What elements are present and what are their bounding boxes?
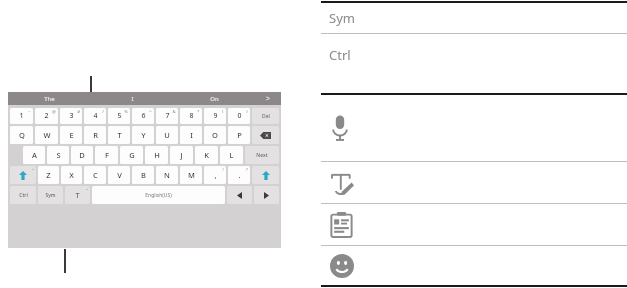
staticText: /: [102, 109, 104, 115]
button[interactable]: D: [71, 146, 93, 164]
staticText: A: [32, 150, 37, 160]
staticText: T: [117, 130, 122, 140]
button[interactable]: A: [23, 146, 45, 164]
staticText: Sym: [45, 192, 56, 199]
button[interactable]: I: [91, 92, 173, 105]
staticText: ^: [149, 109, 152, 115]
button[interactable]: Move cursor left: [227, 186, 252, 204]
button[interactable]: N: [156, 166, 178, 184]
staticText: J: [180, 150, 183, 160]
button[interactable]: 4: [84, 108, 106, 124]
button[interactable]: X: [61, 166, 82, 184]
button[interactable]: H: [145, 146, 168, 164]
staticText: ): [246, 109, 248, 115]
button[interactable]: Shift: [252, 166, 279, 184]
button[interactable]: Emoji: [321, 246, 627, 285]
staticText: •: [32, 167, 34, 173]
button[interactable]: Voice input: [321, 95, 627, 161]
button[interactable]: On: [173, 92, 255, 105]
button[interactable]: R: [84, 126, 106, 144]
staticText: T: [75, 190, 80, 200]
staticText: E: [69, 130, 74, 140]
button[interactable]: P: [228, 126, 250, 144]
button[interactable]: Clipboard: [321, 204, 627, 245]
button[interactable]: T: [108, 126, 130, 144]
button[interactable]: Sym: [321, 3, 627, 33]
button[interactable]: B: [132, 166, 154, 184]
button[interactable]: 7: [156, 108, 178, 124]
button[interactable]: Input method: [65, 186, 90, 204]
staticText: .: [238, 170, 241, 180]
button[interactable]: Y: [132, 126, 154, 144]
button[interactable]: Z: [38, 166, 59, 184]
staticText: !: [222, 167, 224, 173]
button[interactable]: I: [180, 126, 202, 144]
button[interactable]: Handwriting: [321, 162, 627, 203]
button[interactable]: S: [47, 146, 69, 164]
staticText: V: [117, 170, 122, 180]
button[interactable]: 0: [228, 108, 250, 124]
staticText: 2: [44, 111, 49, 121]
button[interactable]: .: [228, 166, 250, 184]
staticText: X: [69, 170, 74, 180]
button[interactable]: J: [170, 146, 193, 164]
staticText: Y: [141, 130, 146, 140]
staticText: 9: [213, 111, 218, 121]
button[interactable]: O: [204, 126, 226, 144]
button[interactable]: 6: [132, 108, 154, 124]
staticText: ~: [28, 109, 31, 115]
staticText: (: [222, 109, 224, 115]
staticText: P: [237, 130, 242, 140]
staticText: *: [197, 109, 200, 115]
button[interactable]: 3: [60, 108, 82, 124]
button[interactable]: Ctrl: [321, 34, 627, 93]
button[interactable]: 5: [108, 108, 130, 124]
staticText: M: [188, 170, 195, 180]
button[interactable]: 1: [10, 108, 33, 124]
staticText: @: [52, 109, 56, 115]
staticText: •: [86, 187, 88, 193]
staticText: English(US): [145, 192, 172, 199]
button[interactable]: V: [108, 166, 130, 184]
button[interactable]: English(US): [92, 186, 225, 204]
button[interactable]: Sym: [38, 186, 63, 204]
button[interactable]: Del: [252, 108, 279, 124]
button[interactable]: Q: [10, 126, 33, 144]
button[interactable]: Ctrl: [10, 186, 36, 204]
button[interactable]: 2: [35, 108, 58, 124]
button[interactable]: Move cursor right: [254, 186, 279, 204]
staticText: Del: [262, 113, 270, 120]
button[interactable]: More suggestions: [255, 92, 281, 105]
staticText: O: [212, 130, 218, 140]
button[interactable]: K: [195, 146, 218, 164]
staticText: The: [44, 95, 55, 103]
button[interactable]: G: [120, 146, 143, 164]
staticText: 5: [117, 111, 122, 121]
staticText: 6: [141, 111, 146, 121]
staticText: W: [43, 130, 51, 140]
button[interactable]: L: [220, 146, 243, 164]
button[interactable]: Next: [245, 146, 279, 164]
staticText: B: [141, 170, 146, 180]
staticText: K: [204, 150, 209, 160]
button[interactable]: U: [156, 126, 178, 144]
button[interactable]: 8: [180, 108, 202, 124]
button[interactable]: ,: [204, 166, 226, 184]
staticText: %: [124, 109, 128, 115]
staticText: U: [164, 130, 170, 140]
button[interactable]: W: [35, 126, 58, 144]
button[interactable]: Backspace: [252, 126, 279, 144]
button[interactable]: E: [60, 126, 82, 144]
staticText: F: [105, 150, 109, 160]
staticText: I: [190, 130, 193, 140]
staticText: 7: [165, 111, 170, 121]
button[interactable]: F: [95, 146, 118, 164]
staticText: Next: [256, 152, 268, 159]
button[interactable]: M: [180, 166, 202, 184]
staticText: I: [131, 95, 134, 103]
staticText: &: [172, 109, 176, 115]
button[interactable]: 9: [204, 108, 226, 124]
button[interactable]: The: [8, 92, 91, 105]
button[interactable]: Shift: [10, 166, 36, 184]
button[interactable]: C: [84, 166, 106, 184]
